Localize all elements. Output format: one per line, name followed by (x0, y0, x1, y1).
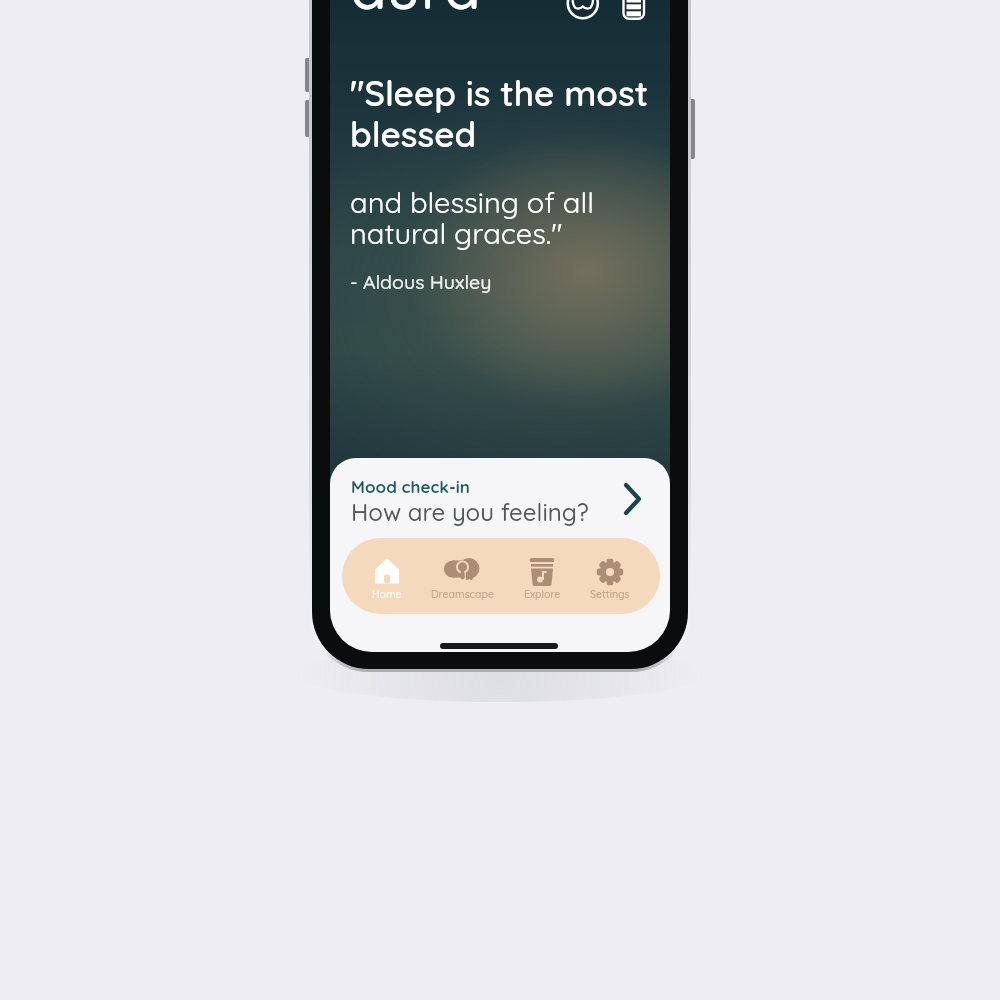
staticText: Explore (524, 587, 561, 600)
button[interactable]: Settings (574, 538, 646, 614)
staticText: "Sleep is the most blessed (350, 71, 649, 156)
staticText: - Aldous Huxley (350, 269, 492, 293)
staticText: Mood check-in (351, 476, 470, 497)
staticText: aura (350, 0, 481, 24)
button[interactable] (621, 0, 647, 19)
staticText: Settings (590, 587, 630, 600)
button[interactable]: Explore (506, 538, 578, 614)
button[interactable] (568, 0, 598, 18)
staticText: How are you feeling? (351, 497, 589, 527)
button[interactable]: Mood check-in (330, 467, 670, 529)
button[interactable]: Dreamscape (426, 538, 498, 614)
staticText: Dreamscape (431, 587, 494, 600)
staticText: and blessing of all natural graces." (350, 184, 594, 251)
button[interactable]: Home (351, 538, 423, 614)
staticText: Home (372, 587, 402, 600)
